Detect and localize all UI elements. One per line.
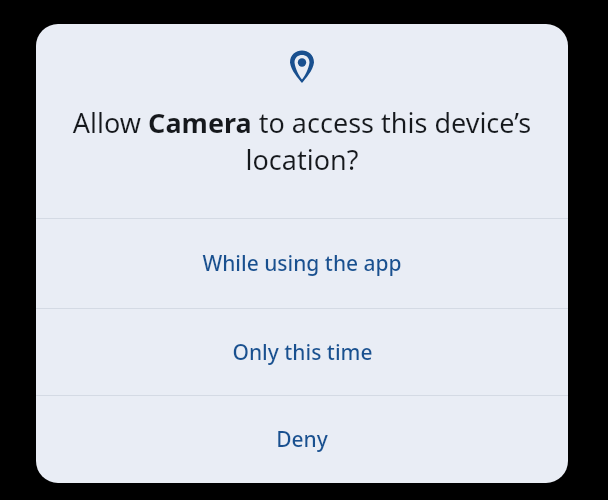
button[interactable]: Deny <box>36 396 568 483</box>
other: Location <box>290 50 314 83</box>
staticText: While using the app <box>202 249 402 278</box>
button[interactable]: Only this time <box>36 309 568 395</box>
staticText: Deny <box>276 425 328 454</box>
button[interactable]: While using the app <box>36 219 568 308</box>
staticText: Only this time <box>232 338 373 367</box>
staticText: Allow Camera to access this device’s loc… <box>54 104 550 178</box>
